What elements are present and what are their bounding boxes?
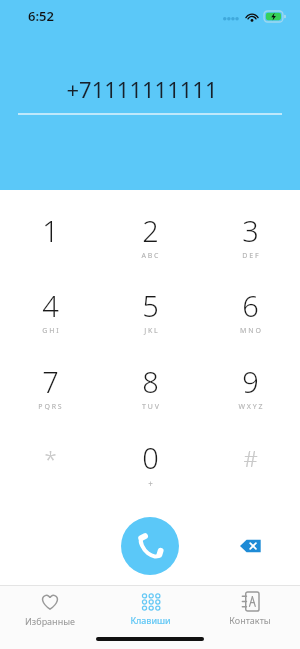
button[interactable]: 2 xyxy=(100,198,200,273)
button[interactable]: 4 xyxy=(0,273,100,349)
button[interactable]: 5 xyxy=(100,273,200,349)
button[interactable]: Backspace xyxy=(234,529,268,563)
button[interactable]: 3 xyxy=(200,198,300,273)
staticText: A B C xyxy=(141,251,159,261)
staticText: +71111111111 xyxy=(66,74,218,104)
staticText: 9 xyxy=(242,362,259,401)
button[interactable]: 7 xyxy=(0,349,100,425)
staticText: * xyxy=(44,443,57,473)
staticText: + xyxy=(148,478,153,489)
staticText: Избранные xyxy=(25,615,75,627)
button[interactable]: 9 xyxy=(200,349,300,425)
staticText: # xyxy=(243,443,258,473)
staticText: 7 xyxy=(42,362,59,401)
staticText: Клавиши xyxy=(130,614,171,626)
staticText: 6 xyxy=(242,286,259,325)
staticText: 0 xyxy=(142,438,159,477)
staticText: Контакты xyxy=(229,614,271,626)
staticText: 2 xyxy=(142,211,159,250)
button[interactable]: Call xyxy=(121,517,179,575)
staticText: J K L xyxy=(144,326,158,336)
staticText: 1 xyxy=(42,211,59,250)
staticText: 5 xyxy=(142,286,159,325)
button[interactable]: 6 xyxy=(200,273,300,349)
staticText: 4 xyxy=(42,286,59,325)
staticText: G H I xyxy=(42,326,59,336)
staticText: T U V xyxy=(142,402,159,412)
staticText: 8 xyxy=(142,362,159,401)
staticText: P Q R S xyxy=(38,402,62,412)
staticText: 6:52 xyxy=(28,7,54,25)
staticText: 3 xyxy=(242,211,259,250)
button[interactable]: * xyxy=(0,425,100,501)
button[interactable]: Избранные xyxy=(0,586,100,632)
button[interactable]: 8 xyxy=(100,349,200,425)
button[interactable]: # xyxy=(200,425,300,501)
staticText: M N O xyxy=(240,326,261,336)
button[interactable]: Контакты xyxy=(200,586,300,632)
button[interactable]: 1 xyxy=(0,198,100,273)
staticText: D E F xyxy=(242,251,259,261)
staticText: W X Y Z xyxy=(238,402,263,412)
button[interactable]: 0 xyxy=(100,425,200,501)
button[interactable]: Клавиши xyxy=(100,586,200,632)
